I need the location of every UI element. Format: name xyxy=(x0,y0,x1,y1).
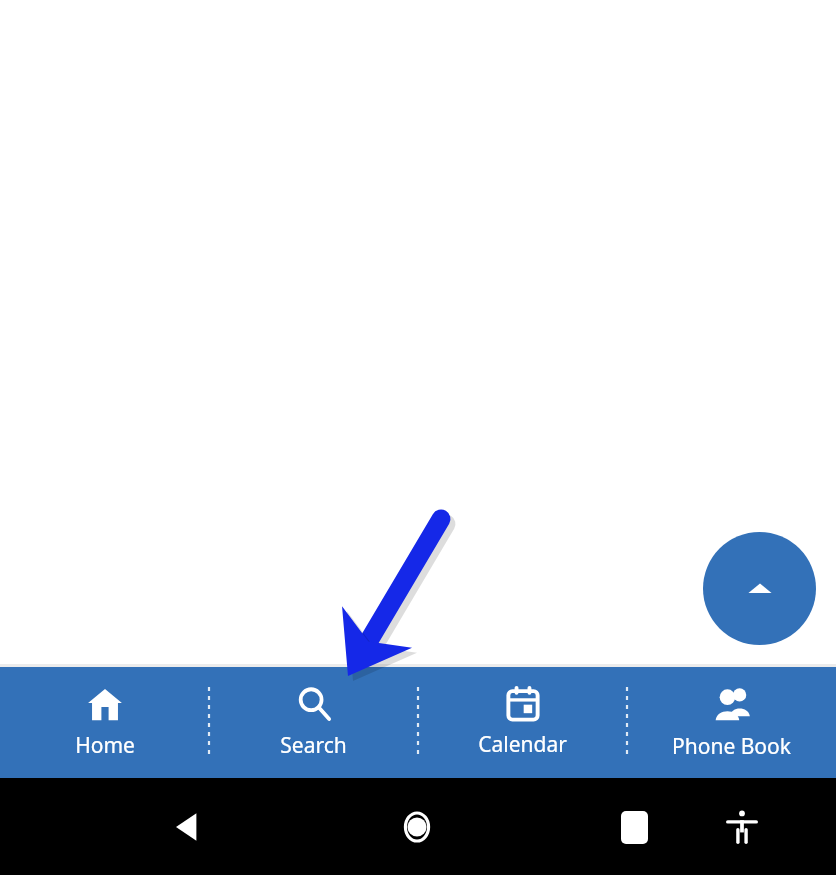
button[interactable]: Search xyxy=(209,667,418,778)
staticText: Calendar xyxy=(478,730,567,759)
button[interactable]: Scroll to top xyxy=(703,532,816,645)
button[interactable]: Home xyxy=(387,797,447,857)
button[interactable]: Calendar xyxy=(418,667,627,778)
button[interactable]: Home xyxy=(0,667,209,778)
button[interactable]: Phone Book xyxy=(627,667,836,778)
staticText: Search xyxy=(280,731,347,760)
staticText: Phone Book xyxy=(672,732,791,761)
staticText: Home xyxy=(75,731,135,760)
button[interactable]: Recent apps xyxy=(604,797,664,857)
button[interactable]: Accessibility xyxy=(712,797,772,857)
button[interactable]: Back xyxy=(158,797,218,857)
